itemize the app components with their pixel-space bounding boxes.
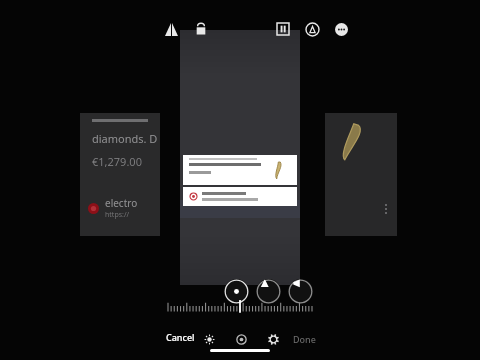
button[interactable]: Gallery	[272, 18, 294, 40]
staticText: diamonds. D	[92, 131, 158, 146]
button[interactable]: Flash auto	[301, 18, 323, 40]
staticText: https://	[105, 210, 130, 220]
button[interactable]: Full blur	[224, 279, 249, 304]
button[interactable]: Previous screenshot	[80, 113, 160, 236]
button[interactable]	[183, 187, 297, 206]
button[interactable]: Adjust	[264, 330, 282, 348]
button[interactable]: More options	[330, 18, 352, 40]
staticText: electro	[105, 196, 138, 210]
button[interactable]	[183, 155, 297, 185]
button[interactable]: Cancel	[162, 328, 199, 346]
button[interactable]: Next screenshot	[325, 113, 397, 236]
button[interactable]: Lock rotation	[190, 18, 212, 40]
button[interactable]: Mirror	[160, 18, 182, 40]
button[interactable]: Done	[289, 330, 320, 348]
staticText: Cancel	[166, 331, 195, 343]
button[interactable]: Edge blur	[288, 279, 313, 304]
button[interactable]: Gradient blur	[256, 279, 281, 304]
button[interactable]: Brightness	[200, 330, 218, 348]
staticText: Done	[293, 333, 316, 345]
button[interactable]: Blur	[232, 330, 250, 348]
staticText: €1,279.00	[92, 154, 142, 169]
